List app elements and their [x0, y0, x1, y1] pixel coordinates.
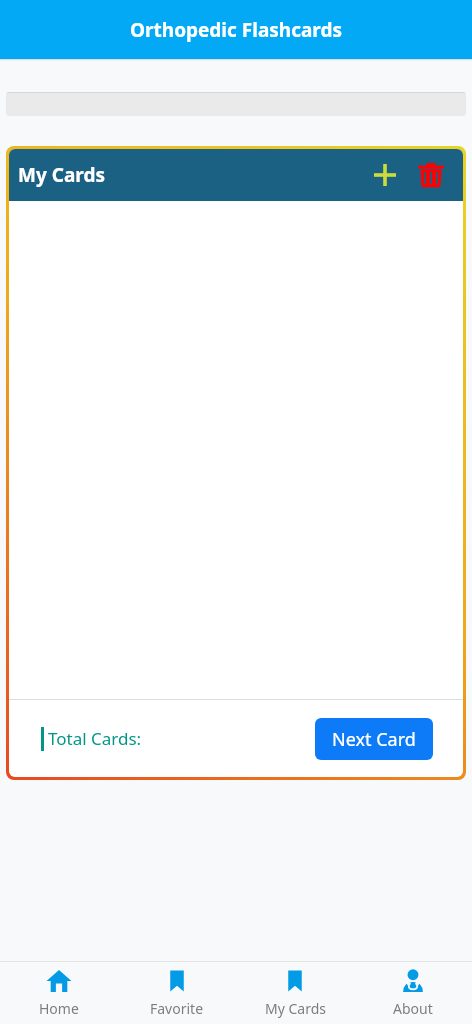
button[interactable]: My Cards: [236, 962, 354, 1024]
button[interactable]: Next Card: [315, 718, 433, 760]
button[interactable]: Favorite: [118, 962, 236, 1024]
staticText: Total Cards:: [48, 727, 142, 750]
button[interactable]: About: [354, 962, 472, 1024]
button[interactable]: Delete all cards: [411, 155, 451, 195]
staticText: Favorite: [150, 999, 204, 1018]
button[interactable]: Home: [0, 962, 118, 1024]
staticText: Orthopedic Flashcards: [130, 17, 342, 43]
staticText: Home: [39, 999, 79, 1018]
button[interactable]: [6, 92, 466, 116]
button[interactable]: Add card: [365, 155, 405, 195]
staticText: My Cards: [18, 162, 105, 188]
staticText: My Cards: [265, 999, 326, 1018]
staticText: Next Card: [332, 727, 416, 752]
staticText: About: [393, 999, 433, 1018]
